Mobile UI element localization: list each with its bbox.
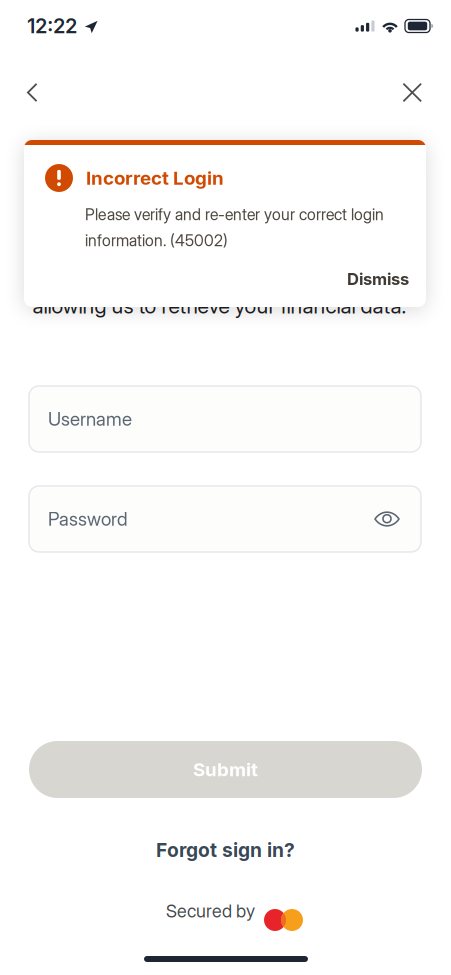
button[interactable]: Close xyxy=(380,52,451,121)
staticText: Username xyxy=(48,408,132,430)
button[interactable]: Back xyxy=(0,52,59,121)
staticText: Submit xyxy=(193,758,258,781)
button[interactable]: Submit xyxy=(29,741,422,798)
staticText: Dismiss xyxy=(347,269,409,289)
staticText: Password xyxy=(48,508,128,530)
staticText: Please verify and re-enter your correct … xyxy=(85,205,384,250)
staticText: 12:22 xyxy=(27,14,77,38)
staticText: allowing us to retrieve your financial d… xyxy=(32,293,406,319)
button[interactable]: Show password xyxy=(374,511,400,526)
staticText: Incorrect Login xyxy=(86,167,224,189)
staticText: Forgot sign in? xyxy=(156,838,295,862)
button[interactable]: Dismiss xyxy=(347,269,409,289)
staticText: Secured by xyxy=(166,900,255,922)
button[interactable]: Forgot sign in? xyxy=(0,833,451,867)
